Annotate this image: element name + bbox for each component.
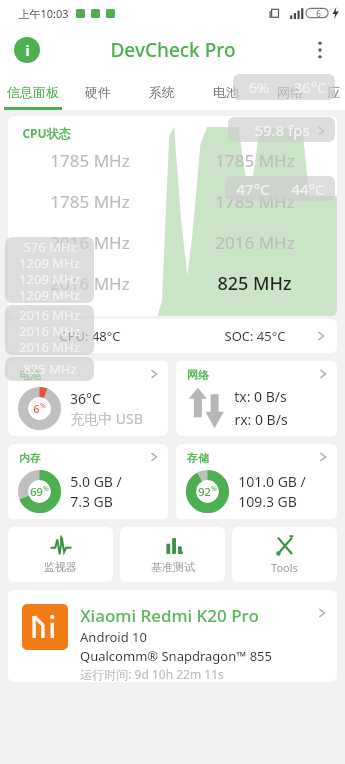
button[interactable]: Xiaomi Redmi K20 Pro: [8, 590, 337, 682]
staticText: 101.0 GB /: [238, 472, 306, 491]
staticText: 1785 MHz: [215, 190, 295, 213]
staticText: 硬件: [85, 84, 111, 100]
staticText: 825 MHz: [23, 360, 77, 378]
button[interactable]: Monitor: [8, 527, 113, 582]
staticText: 1785 MHz: [50, 190, 130, 213]
button[interactable]: 存储: [176, 444, 337, 519]
staticText: 47°C: [236, 179, 270, 199]
staticText: 网络: [277, 84, 303, 100]
staticText: 2016 MHz: [215, 231, 295, 254]
button[interactable]: 电池: [8, 361, 168, 436]
button[interactable]: About: [14, 37, 40, 63]
staticText: 电池: [213, 84, 239, 100]
button[interactable]: 网络: [176, 361, 337, 436]
staticText: Xiaomi Redmi K20 Pro: [80, 604, 259, 627]
button[interactable]: CPU状态: [8, 116, 337, 316]
button[interactable]: 电池: [194, 74, 258, 110]
staticText: 系统: [149, 84, 175, 100]
staticText: tx: 0 B/s: [234, 387, 287, 406]
other: Monitor: [50, 535, 72, 557]
staticText: %: [43, 484, 49, 494]
staticText: 网络: [187, 368, 209, 382]
staticText: 2016 MHz: [50, 231, 130, 254]
staticText: 6: [316, 8, 321, 19]
staticText: 基准测试: [151, 560, 195, 574]
staticText: 69: [30, 484, 43, 499]
staticText: 6%: [248, 77, 270, 97]
staticText: 576 MHz: [23, 238, 77, 254]
staticText: 2016 MHz: [19, 306, 80, 322]
button[interactable]: More options: [305, 35, 335, 65]
staticText: 2016 MHz: [50, 272, 130, 295]
staticText: i: [25, 41, 30, 60]
staticText: %: [40, 401, 46, 411]
staticText: 电池: [19, 368, 41, 382]
button[interactable]: CPU: 48°C: [8, 319, 337, 353]
staticText: 1785 MHz: [215, 149, 295, 172]
staticText: 1209 MHz: [19, 270, 80, 286]
staticText: Qualcomm® Snapdragon™ 855: [80, 647, 272, 665]
button[interactable]: Benchmark: [120, 527, 225, 582]
staticText: CPU状态: [22, 125, 71, 141]
staticText: 监视器: [44, 560, 77, 574]
staticText: 109.3 GB: [238, 492, 297, 511]
staticText: Tools: [271, 560, 298, 575]
staticText: 36°C: [70, 389, 101, 408]
staticText: %: [211, 484, 217, 494]
staticText: 充电中 USB: [70, 409, 143, 428]
staticText: 1209 MHz: [19, 286, 80, 302]
staticText: 内存: [19, 451, 41, 465]
staticText: rx: 0 B/s: [234, 410, 288, 429]
staticText: 1209 MHz: [19, 254, 80, 270]
staticText: 信息面板: [7, 84, 59, 100]
other: Tools: [274, 535, 296, 557]
staticText: 2016 MHz: [19, 338, 80, 354]
staticText: 6: [33, 401, 40, 416]
staticText: 825 MHz: [217, 271, 292, 296]
staticText: 存储: [187, 451, 209, 465]
staticText: 59.8 fps: [254, 120, 310, 140]
button[interactable]: 系统: [130, 74, 194, 110]
staticText: 应: [327, 84, 340, 100]
staticText: 2016 MHz: [19, 322, 80, 338]
button[interactable]: 应: [322, 74, 345, 110]
staticText: 运行时间: 9d 10h 22m 11s: [80, 666, 224, 682]
staticText: DevCheck Pro: [110, 37, 236, 63]
staticText: 1785 MHz: [50, 149, 130, 172]
staticText: 5.0 GB /: [70, 472, 122, 491]
button[interactable]: 内存: [8, 444, 168, 519]
staticText: Android 10: [80, 628, 147, 646]
staticText: SOC: 45°C: [224, 327, 286, 345]
staticText: CPU: 48°C: [59, 327, 121, 345]
button[interactable]: 网络: [258, 74, 322, 110]
staticText: 44°C: [291, 179, 325, 199]
button[interactable]: 信息面板: [0, 74, 65, 110]
staticText: 36°C: [293, 77, 327, 97]
staticText: 上午10:03: [18, 6, 69, 21]
button[interactable]: 硬件: [65, 74, 130, 110]
button[interactable]: Tools: [232, 527, 337, 582]
other: Benchmark: [162, 535, 184, 557]
staticText: 92: [198, 484, 211, 499]
staticText: 7.3 GB: [70, 492, 113, 511]
